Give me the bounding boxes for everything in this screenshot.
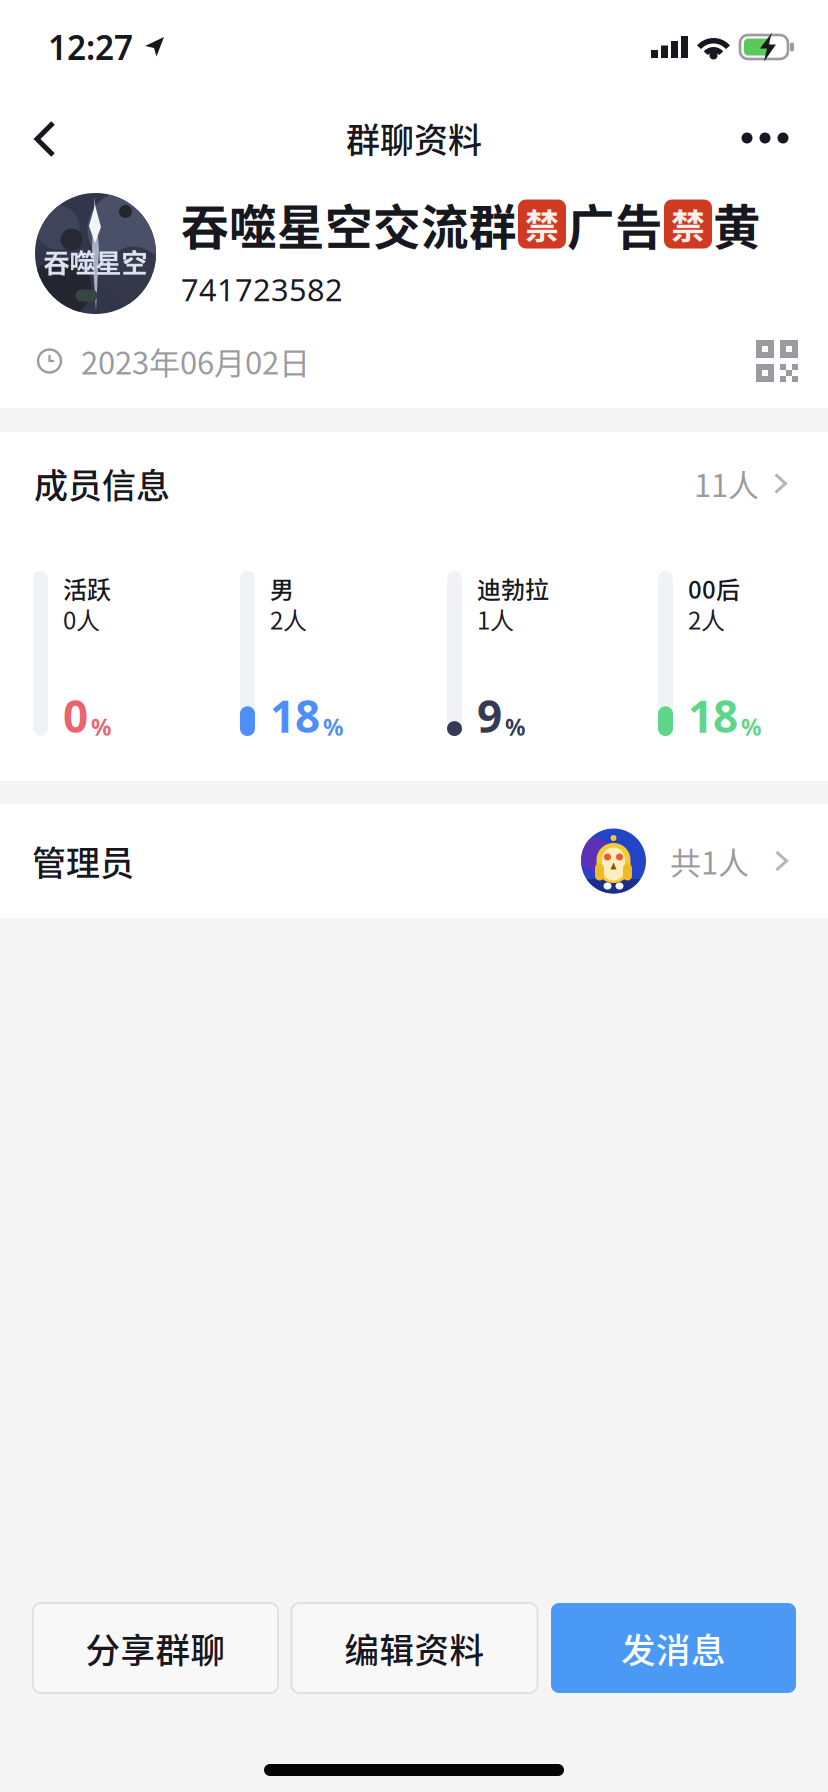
staticText: 00后 [688, 571, 740, 606]
staticText: 迪勃拉 [477, 571, 549, 606]
button[interactable]: Group QR code [745, 329, 809, 393]
button[interactable]: Back [10, 103, 76, 173]
staticText: 吞噬星空交流群 [181, 190, 517, 258]
staticText: 9 [477, 687, 502, 745]
staticText: 741723582 [181, 269, 343, 310]
staticText: 2人 [688, 602, 725, 637]
staticText: 12:27 [48, 25, 133, 69]
button[interactable]: 管理员 [0, 804, 828, 918]
staticText: 分享群聊 [85, 1623, 225, 1673]
staticText: 18 [270, 687, 320, 745]
button[interactable]: 分享群聊 [33, 1603, 278, 1693]
staticText: 编辑资料 [344, 1623, 484, 1673]
button[interactable]: 发消息 [551, 1603, 796, 1693]
staticText: % [505, 712, 525, 742]
staticText: 2023年06月02日 [81, 339, 310, 383]
staticText: 0 [63, 687, 88, 745]
staticText: 广告 [567, 190, 663, 258]
staticText: 发消息 [621, 1623, 726, 1673]
button[interactable]: 成员信息 [0, 432, 828, 532]
staticText: 共1人 [670, 839, 749, 883]
staticText: 男 [270, 571, 294, 606]
staticText: 1人 [477, 602, 514, 637]
staticText: 吞噬星空 [43, 243, 147, 280]
staticText: 活跃 [63, 571, 111, 606]
staticText: % [91, 712, 111, 742]
button[interactable]: More options [732, 103, 798, 173]
staticText: 管理员 [32, 836, 134, 886]
staticText: 2人 [270, 602, 307, 637]
staticText: 0人 [63, 602, 100, 637]
staticText: 禁 [671, 199, 705, 249]
staticText: 11人 [694, 461, 759, 506]
staticText: % [323, 712, 343, 742]
staticText: 黄 [713, 190, 761, 258]
staticText: 成员信息 [34, 459, 170, 508]
staticText: 18 [688, 687, 738, 745]
staticText: % [741, 712, 761, 742]
staticText: 禁 [525, 199, 559, 249]
staticText: 群聊资料 [346, 113, 482, 163]
button[interactable]: 编辑资料 [291, 1603, 537, 1693]
